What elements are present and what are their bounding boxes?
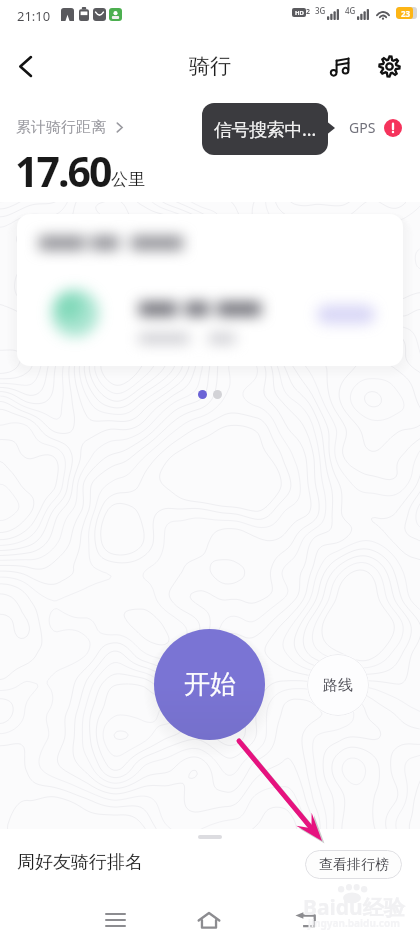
- button[interactable]: 查看排行榜: [305, 850, 402, 879]
- staticText: 21:10: [17, 7, 51, 25]
- staticText: GPS: [349, 118, 376, 137]
- staticText: 骑行: [189, 53, 231, 79]
- button[interactable]: Back: [3, 44, 47, 88]
- button[interactable]: 路线: [307, 654, 369, 716]
- button[interactable]: Music: [319, 44, 363, 88]
- staticText: 信号搜索中…: [214, 117, 316, 142]
- button[interactable]: Recent apps: [89, 894, 141, 940]
- staticText: 周好友骑行排名: [17, 851, 143, 874]
- button[interactable]: Home: [183, 894, 235, 940]
- button[interactable]: Back: [279, 894, 331, 940]
- staticText: 2: [306, 7, 311, 17]
- staticText: 23: [401, 8, 411, 19]
- staticText: 累计骑行距离: [16, 118, 106, 137]
- button[interactable]: 开始: [154, 629, 265, 740]
- staticText: HD: [295, 9, 304, 17]
- button[interactable]: Settings: [367, 44, 411, 88]
- staticText: 公里: [111, 169, 145, 190]
- button[interactable]: [17, 214, 403, 366]
- button[interactable]: 累计骑行距离: [16, 118, 126, 137]
- staticText: 3G: [315, 5, 326, 16]
- staticText: 开始: [184, 668, 236, 701]
- staticText: 查看排行榜: [319, 856, 389, 874]
- staticText: Baidu经验: [303, 893, 405, 922]
- staticText: 17.60: [15, 143, 111, 199]
- staticText: jingyan.baidu.com: [308, 916, 400, 930]
- staticText: 4G: [345, 5, 356, 16]
- staticText: 路线: [323, 676, 353, 695]
